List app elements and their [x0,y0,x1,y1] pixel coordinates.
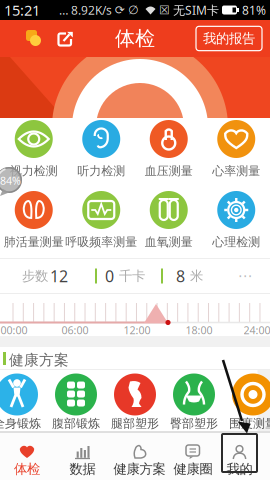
staticText: 我的报告 [203,30,255,47]
button[interactable]: 健康方案 [111,436,168,480]
staticText: 0 [105,265,114,287]
staticText: 腹部锻炼 [52,416,100,431]
button[interactable]: 我的报告 [196,26,262,51]
staticText: 围度测量 [229,416,270,431]
button[interactable]: 呼吸频率测量 [67,191,135,248]
staticText: 千卡 [119,268,145,284]
staticText: 12:00 [123,323,150,337]
staticText: 18:00 [185,323,212,337]
button[interactable]: 心率测量 [202,120,270,177]
staticText: 06:00 [61,323,88,337]
button[interactable]: 视力检测 [0,120,67,177]
staticText: 00:00 [0,323,27,337]
staticText: 体检 [14,461,40,477]
button[interactable]: 我的 [213,436,265,480]
staticText: 呼吸频率测量 [65,235,137,249]
staticText: … 8.92K/s [59,2,112,18]
button[interactable]: 数据 [54,436,111,480]
button[interactable]: 臀部塑形 [164,372,223,431]
staticText: 8 [176,265,185,287]
button[interactable]: 体检 [0,436,54,480]
staticText: 心率测量 [212,164,260,178]
staticText: 腿部塑形 [111,416,159,431]
staticText: 12 [50,265,68,287]
button[interactable]: 全身锻炼 [0,372,46,431]
staticText: 体检 [115,26,155,51]
staticText: 15:21 [4,0,40,20]
staticText: 无SIM卡 [173,2,219,18]
staticText: 血氧测量 [145,235,193,249]
staticText: 视力检测 [10,164,58,178]
staticText: 肺活量测量 [4,235,64,249]
button[interactable]: 消息 [0,30,42,47]
button[interactable]: 电量 84% [0,167,22,193]
button[interactable]: 心理检测 [202,191,270,248]
staticText: 米 [190,268,203,284]
button[interactable]: 健康圈 [168,436,218,480]
staticText: ☒ [159,3,170,17]
staticText: 24:00 [243,323,270,337]
staticText: 数据 [69,461,95,477]
staticText: 我的 [226,461,252,477]
staticText: 血压测量 [145,164,193,178]
button[interactable]: 血压测量 [135,120,202,177]
staticText: ⟳ [115,3,125,17]
staticText: 臀部塑形 [170,416,218,431]
button[interactable]: 血氧测量 [135,191,202,248]
button[interactable]: 听力检测 [67,120,135,177]
staticText: 步数 [22,268,48,284]
button[interactable]: 步数 [0,259,270,293]
staticText: ∅ [128,3,142,17]
staticText: 全身锻炼 [0,416,41,431]
staticText: 健康方案 [113,461,165,477]
button[interactable]: 分享 [42,29,74,47]
staticText: 84% [0,173,21,188]
button[interactable]: 肺活量测量 [0,191,67,248]
staticText: 健康圈 [173,461,212,477]
staticText: 心理检测 [212,235,260,249]
button[interactable]: 腹部锻炼 [46,372,105,431]
staticText: 81% [242,2,266,18]
staticText: 听力检测 [77,164,125,178]
button[interactable]: 围度测量 [223,372,270,431]
staticText: 健康方案 [9,351,69,369]
button[interactable]: 腿部塑形 [105,372,164,431]
staticText: ⋯ [238,268,253,284]
